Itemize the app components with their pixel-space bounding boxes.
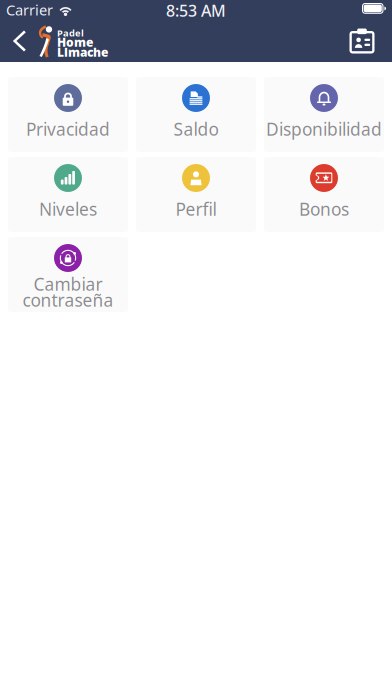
button[interactable]: Saldo: [136, 77, 256, 152]
staticText: Carrier: [6, 0, 53, 19]
staticText: Perfil: [175, 197, 216, 220]
button[interactable]: Atrás: [2, 22, 36, 60]
staticText: Saldo: [173, 117, 218, 140]
button[interactable]: Disponibilidad: [264, 77, 384, 152]
staticText: Limache: [57, 44, 108, 60]
staticText: contraseña: [22, 288, 113, 311]
staticText: Bonos: [299, 197, 349, 220]
button[interactable]: Perfil: [136, 157, 256, 232]
staticText: Privacidad: [26, 117, 110, 140]
button[interactable]: Bonos: [264, 157, 384, 232]
staticText: Padel: [57, 27, 84, 39]
button[interactable]: Cambiar: [8, 237, 128, 312]
staticText: Niveles: [39, 197, 97, 220]
staticText: 8:53 AM: [166, 0, 226, 21]
button[interactable]: Privacidad: [8, 77, 128, 152]
staticText: Home: [57, 34, 93, 50]
button[interactable]: Niveles: [8, 157, 128, 232]
staticText: Disponibilidad: [266, 117, 382, 140]
button[interactable]: Credencial: [340, 22, 384, 60]
staticText: Cambiar: [33, 272, 102, 295]
